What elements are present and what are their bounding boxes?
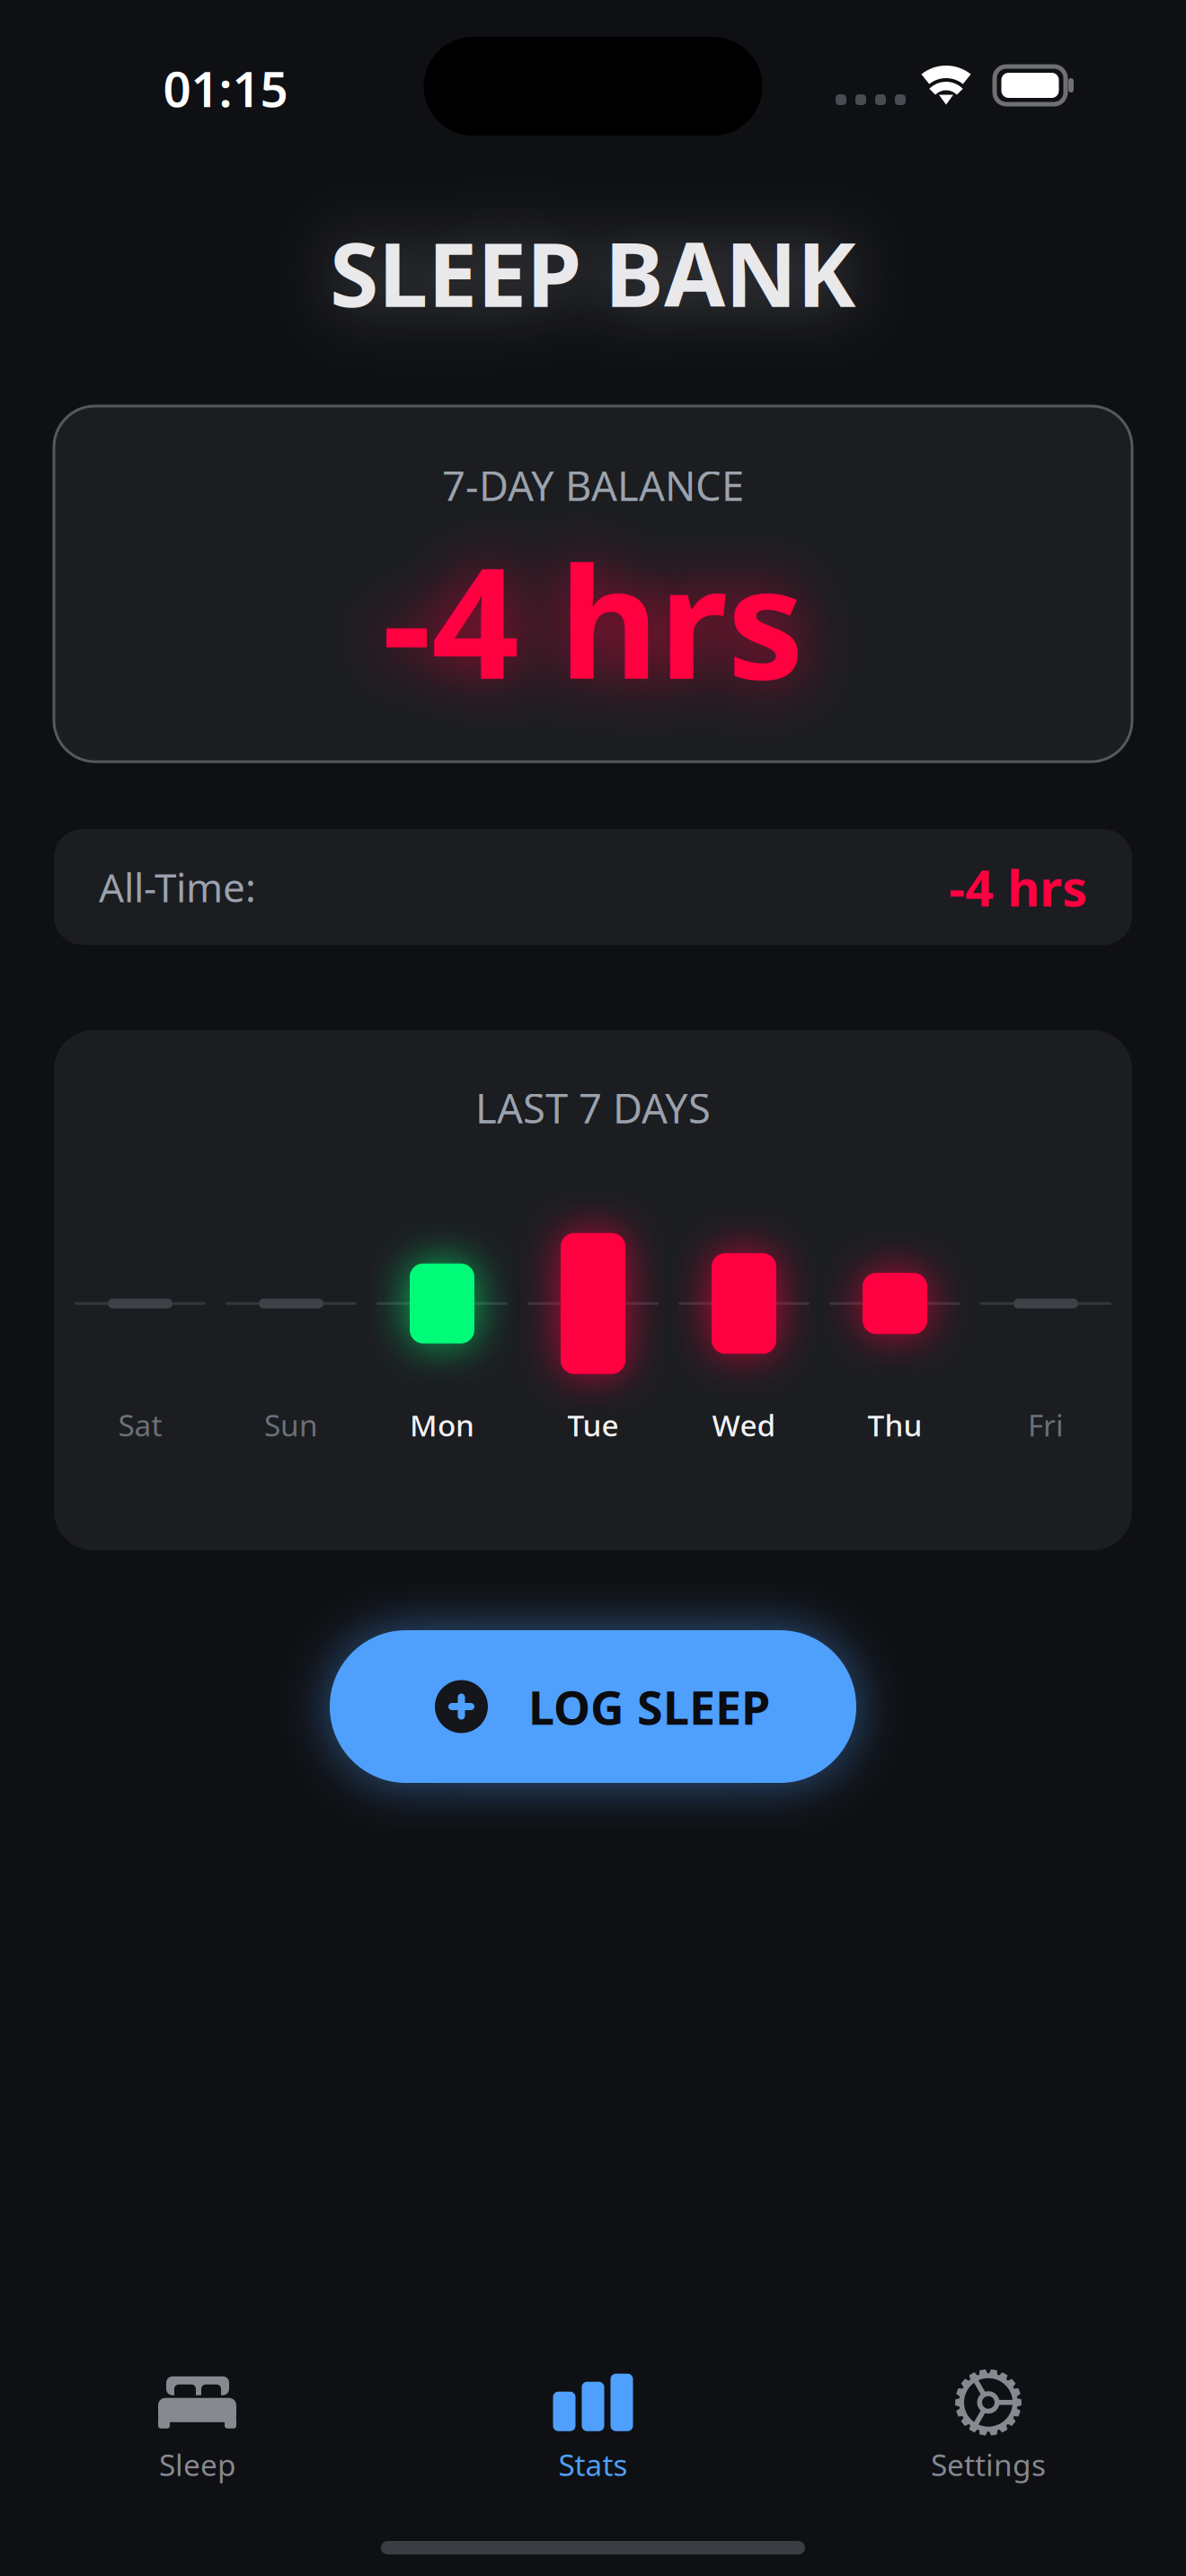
- button[interactable]: Sleep: [0, 2368, 395, 2484]
- staticText: 7-DAY BALANCE: [442, 458, 744, 512]
- staticText: Sleep: [159, 2445, 236, 2484]
- staticText: Settings: [931, 2445, 1046, 2484]
- staticText: Mon: [410, 1405, 474, 1445]
- staticText: SLEEP BANK: [330, 214, 856, 331]
- staticText: LAST 7 DAYS: [475, 1081, 711, 1135]
- button[interactable]: Stats: [395, 2368, 791, 2484]
- button[interactable]: Settings: [791, 2368, 1186, 2484]
- staticText: Tue: [567, 1405, 619, 1445]
- staticText: All-Time:: [99, 861, 256, 913]
- staticText: 01:15: [163, 55, 288, 121]
- button[interactable]: LOG SLEEP: [330, 1630, 856, 1783]
- staticText: -4 hrs: [382, 518, 804, 721]
- staticText: Sun: [264, 1405, 318, 1445]
- staticText: -4 hrs: [949, 854, 1087, 920]
- staticText: Thu: [867, 1405, 922, 1445]
- staticText: LOG SLEEP: [528, 1676, 770, 1738]
- staticText: Stats: [558, 2445, 628, 2484]
- staticText: Wed: [712, 1405, 776, 1445]
- staticText: Sat: [118, 1405, 162, 1445]
- staticText: Fri: [1028, 1405, 1064, 1445]
